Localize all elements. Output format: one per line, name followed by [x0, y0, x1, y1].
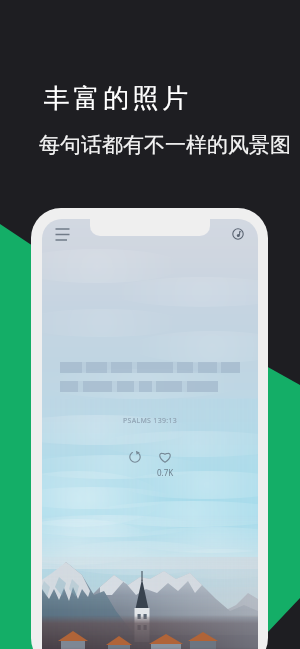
staticText: 0.7K: [157, 467, 174, 478]
staticText: 丰富的照片: [42, 82, 190, 115]
button[interactable]: Music: [230, 226, 246, 242]
button[interactable]: Menu: [54, 227, 72, 245]
staticText: PSALMS 139:13: [123, 416, 178, 426]
button[interactable]: Like: [155, 447, 175, 467]
staticText: 每句话都有不一样的风景图: [39, 132, 291, 158]
button[interactable]: Refresh: [126, 448, 144, 466]
